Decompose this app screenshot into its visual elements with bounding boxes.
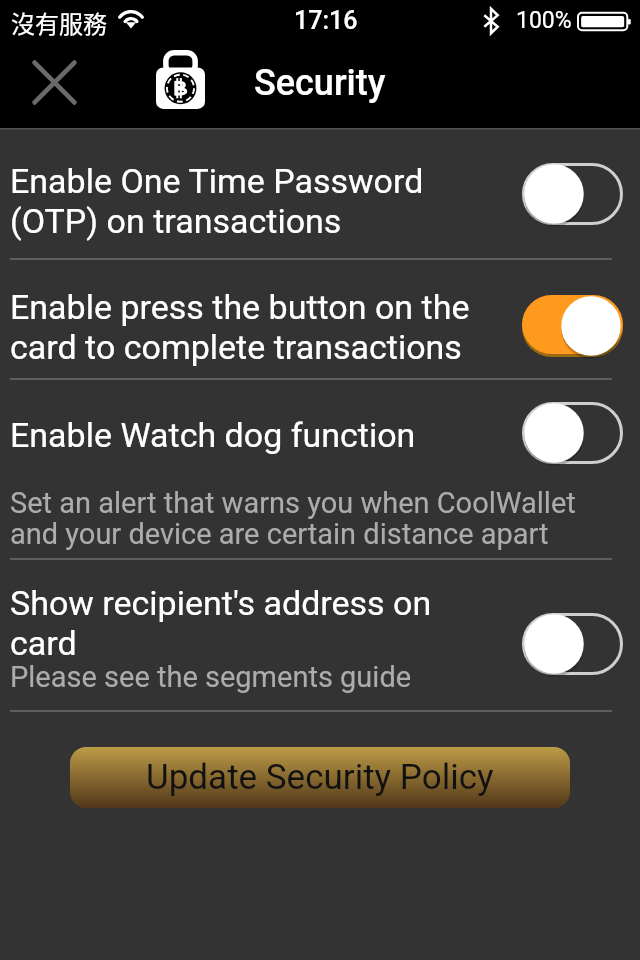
staticText: Please see the segments guide bbox=[10, 660, 630, 694]
button[interactable]: Disabled bbox=[522, 402, 623, 464]
button[interactable]: Update Security Policy bbox=[70, 747, 570, 808]
staticText: Show recipient's address on card bbox=[10, 583, 515, 663]
staticText: Set an alert that warns you when CoolWal… bbox=[10, 486, 630, 551]
button[interactable] bbox=[0, 560, 640, 710]
button[interactable]: Enabled bbox=[522, 295, 623, 357]
staticText: Enable Watch dog function bbox=[10, 415, 515, 455]
button[interactable] bbox=[0, 131, 640, 258]
button[interactable]: Close bbox=[10, 38, 98, 126]
staticText: Enable press the button on the card to c… bbox=[10, 287, 515, 367]
staticText: 100% bbox=[516, 7, 572, 34]
button[interactable] bbox=[0, 380, 640, 558]
staticText: 17:16 bbox=[294, 6, 358, 35]
button[interactable]: Disabled bbox=[522, 163, 623, 225]
button[interactable] bbox=[0, 260, 640, 378]
staticText: Enable One Time Password (OTP) on transa… bbox=[10, 161, 515, 241]
staticText: Security bbox=[254, 62, 386, 104]
button[interactable]: Disabled bbox=[522, 613, 623, 675]
staticText: 沒有服務 bbox=[11, 5, 107, 40]
staticText: Update Security Policy bbox=[146, 757, 494, 798]
